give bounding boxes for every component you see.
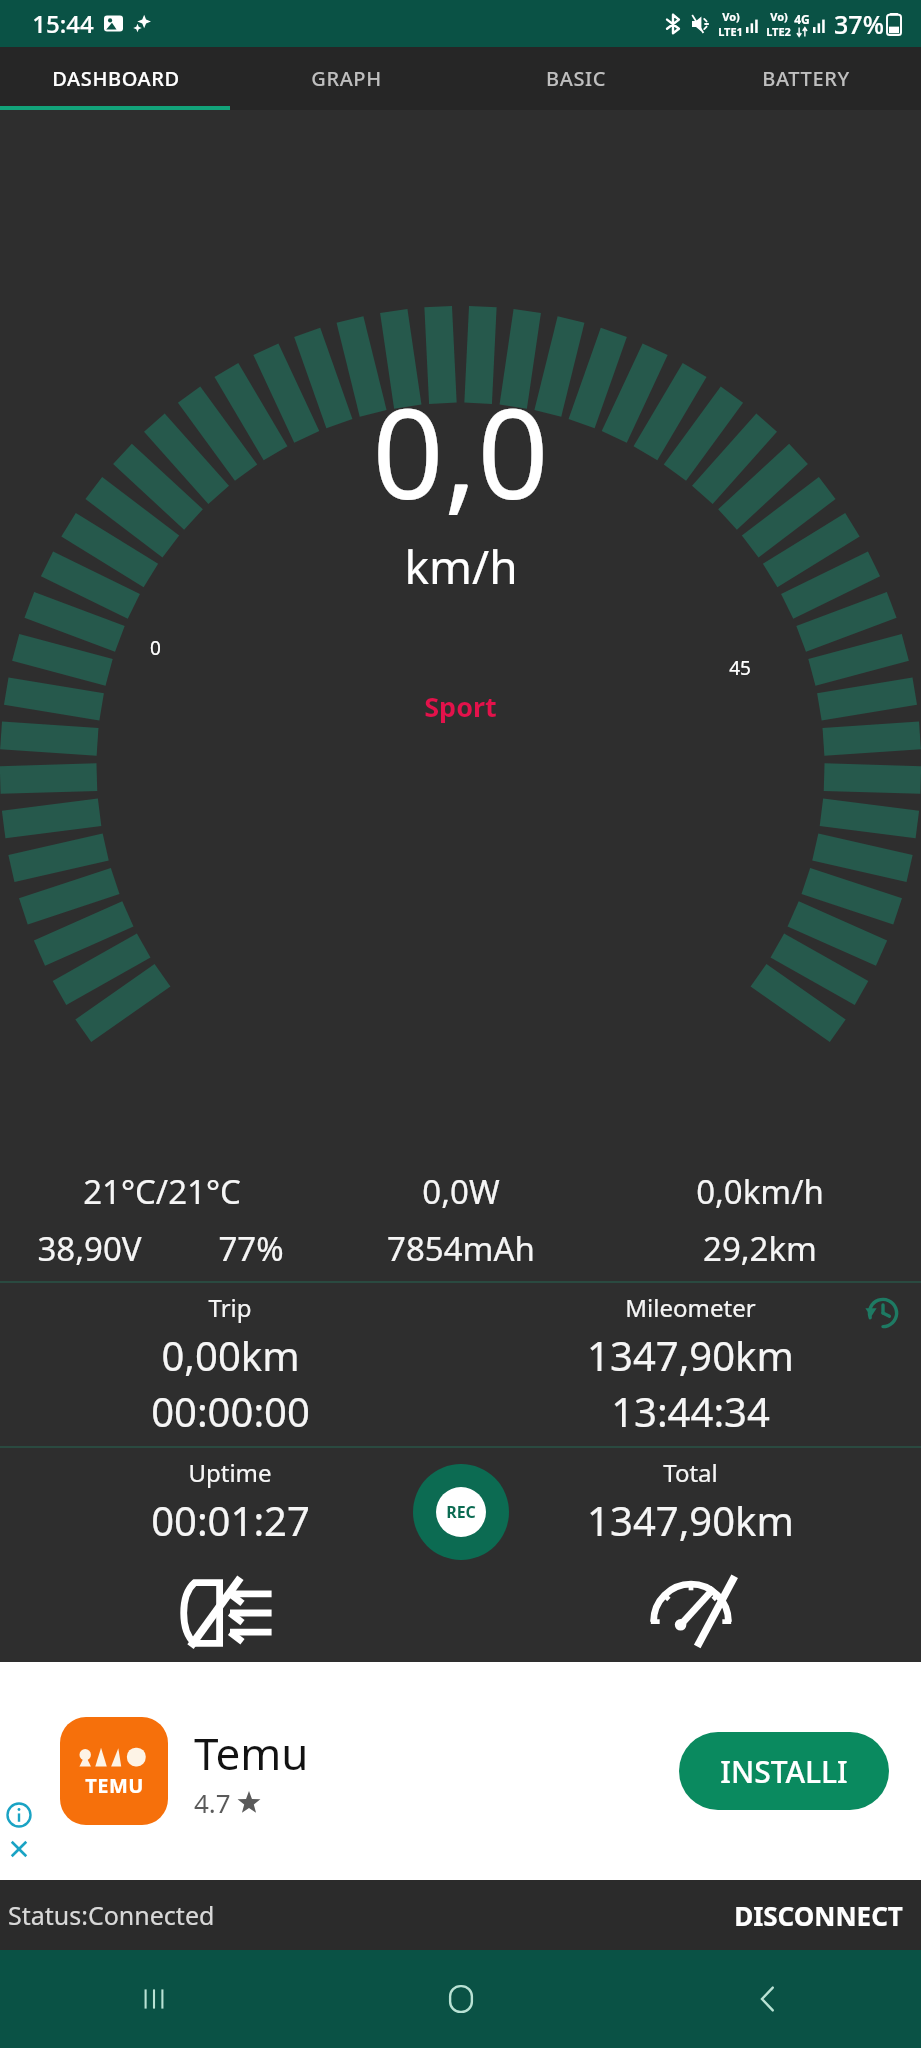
staticText: Vo) [722,9,740,24]
staticText: 38,90V [37,1226,142,1271]
button[interactable]: DASHBOARD [0,47,231,110]
button[interactable]: BATTERY [691,47,921,110]
staticText: Status:Connected [8,1898,215,1932]
staticText: 0,00km [161,1328,300,1382]
staticText: Temu [194,1723,309,1783]
staticText: BASIC [546,65,606,92]
button[interactable]: History [863,1293,903,1333]
button[interactable]: BASIC [461,47,691,110]
button[interactable]: Uptime [0,1456,460,1547]
staticText: TEMU [85,1772,144,1799]
staticText: 37% [834,7,884,41]
staticText: 0,0W [422,1169,500,1214]
button[interactable]: Ad info [6,1802,32,1828]
button[interactable]: TEMU [0,1662,921,1880]
staticText: 15:44 [32,7,94,40]
staticText: 00:01:27 [151,1493,310,1547]
staticText: 00:00:00 [151,1384,310,1438]
staticText: 13:44:34 [611,1384,770,1438]
button[interactable]: Headlight off [0,1570,460,1656]
button[interactable]: Speed limit off [460,1570,921,1656]
staticText: 4.7 [194,1785,231,1820]
staticText: Total [663,1456,718,1489]
staticText: 29,2km [703,1226,817,1271]
button[interactable]: GRAPH [231,47,461,110]
button[interactable]: Mileometer [460,1291,921,1438]
staticText: 4G [794,11,810,27]
staticText: 45 [729,655,751,681]
button[interactable]: Total [460,1456,921,1547]
staticText: INSTALLI [720,1751,848,1792]
staticText: 77% [218,1226,284,1271]
staticText: Mileometer [625,1291,756,1324]
staticText: LTE2 [766,24,791,39]
staticText: Uptime [188,1456,272,1489]
staticText: 1347,90km [587,1328,794,1382]
staticText: DISCONNECT [734,1898,903,1933]
staticText: 0,0km/h [696,1169,824,1214]
staticText: 0 [150,635,161,661]
button[interactable]: Home [307,1950,614,2048]
button[interactable]: Close ad [6,1836,32,1862]
staticText: Sport [424,688,497,725]
staticText: km/h [404,535,518,598]
staticText: 1347,90km [587,1493,794,1547]
button[interactable]: Trip [0,1291,460,1438]
staticText: Trip [208,1291,252,1324]
button[interactable]: Back [614,1950,921,2048]
staticText: REC [446,1501,476,1523]
staticText: LTE1 [718,24,743,39]
staticText: BATTERY [762,65,850,92]
staticText: Vo) [770,9,788,24]
button[interactable]: DISCONNECT [716,1888,921,1943]
button[interactable]: Recent apps [0,1950,307,2048]
button[interactable]: INSTALLI [679,1732,889,1810]
staticText: DASHBOARD [52,65,180,92]
staticText: GRAPH [311,65,382,92]
staticText: 21°C/21°C [83,1169,241,1214]
button[interactable]: Record [413,1464,509,1560]
staticText: 0,0 [372,365,549,535]
staticText: 7854mAh [387,1226,535,1271]
